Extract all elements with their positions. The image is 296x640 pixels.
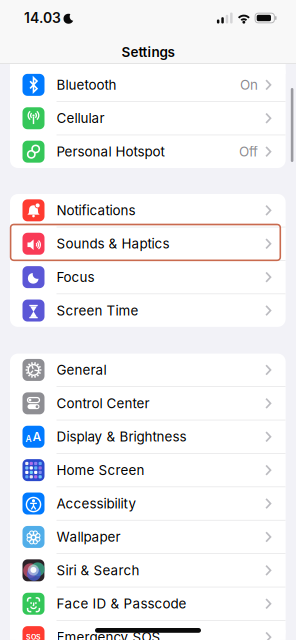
staticText: Display & Brightness xyxy=(56,429,186,445)
staticText: Home Screen xyxy=(56,462,144,478)
button[interactable]: Cellular xyxy=(10,102,286,135)
button[interactable]: Wallpaper xyxy=(10,521,286,553)
staticText: A xyxy=(32,429,41,444)
staticText: 14.03 xyxy=(24,10,61,26)
staticText: Sounds & Haptics xyxy=(56,236,169,252)
button[interactable]: Face ID & Passcode xyxy=(10,587,286,620)
button[interactable]: Bluetooth xyxy=(10,68,286,101)
staticText: General xyxy=(56,362,106,378)
staticText: Off xyxy=(239,143,258,160)
button[interactable]: Sounds & Haptics xyxy=(10,227,286,260)
staticText: Wallpaper xyxy=(56,529,120,545)
staticText: Bluetooth xyxy=(56,77,116,93)
staticText: SOS xyxy=(26,633,41,640)
button[interactable]: Accessibility xyxy=(10,487,286,520)
staticText: Screen Time xyxy=(56,302,138,319)
staticText: Notifications xyxy=(56,202,135,218)
button[interactable]: General xyxy=(10,354,286,386)
staticText: Cellular xyxy=(56,110,104,126)
button[interactable]: Screen Time xyxy=(10,294,286,327)
button[interactable]: Control Center xyxy=(10,387,286,420)
staticText: Siri & Search xyxy=(56,562,139,578)
staticText: Control Center xyxy=(56,395,149,411)
staticText: Face ID & Passcode xyxy=(56,596,186,612)
button[interactable]: Notifications xyxy=(10,194,286,227)
button[interactable]: Home Screen xyxy=(10,454,286,486)
staticText: A xyxy=(26,434,32,444)
staticText: Accessibility xyxy=(56,495,136,512)
staticText: On xyxy=(240,77,258,93)
button[interactable]: Siri & Search xyxy=(10,554,286,587)
staticText: Emergency SOS xyxy=(56,629,160,640)
button[interactable]: SOS xyxy=(10,621,286,640)
button[interactable]: A xyxy=(10,420,286,453)
button[interactable]: Personal Hotspot xyxy=(10,135,286,168)
staticText: Focus xyxy=(56,269,94,285)
button[interactable]: Focus xyxy=(10,261,286,293)
staticText: Settings xyxy=(121,44,174,60)
staticText: Personal Hotspot xyxy=(56,143,164,160)
